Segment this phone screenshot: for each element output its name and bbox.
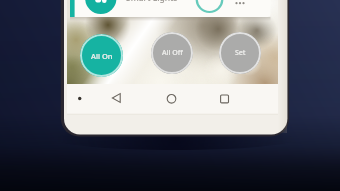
staticText: All Off bbox=[162, 48, 183, 58]
staticText: All On bbox=[91, 51, 113, 61]
button[interactable]: Set bbox=[219, 32, 261, 74]
staticText: Smart Lights bbox=[126, 0, 178, 4]
button[interactable]: All On bbox=[80, 34, 123, 77]
button[interactable]: Smart Lights bbox=[126, 0, 178, 4]
staticText: Set bbox=[235, 48, 246, 58]
button[interactable]: All Off bbox=[151, 32, 193, 74]
